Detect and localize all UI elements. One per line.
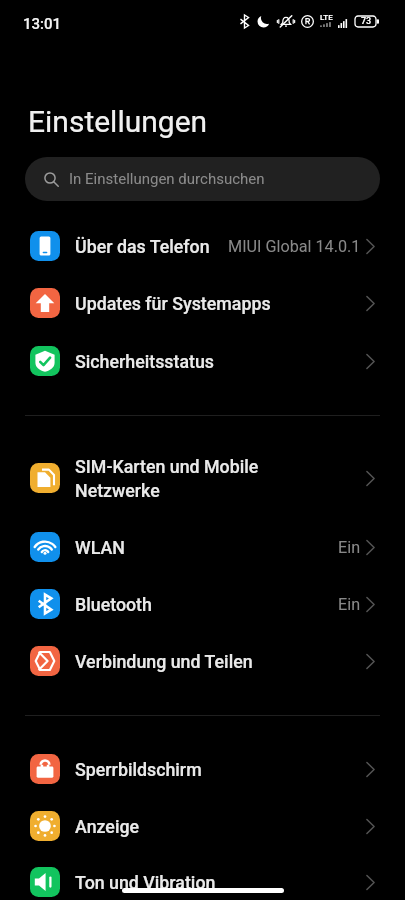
staticText: LTE	[320, 13, 333, 22]
staticText: Ein	[338, 595, 361, 614]
staticText: Anzeige	[75, 816, 366, 837]
button[interactable]: SIM-Karten und Mobile Netzwerke	[0, 449, 405, 507]
staticText: Updates für Systemapps	[75, 293, 366, 314]
button[interactable]: Anzeige	[0, 797, 405, 855]
staticText: MIUI Global 14.0.1	[228, 237, 361, 256]
button[interactable]: In Einstellungen durchsuchen	[25, 157, 380, 201]
staticText: Ein	[338, 538, 361, 557]
staticText: WLAN	[75, 537, 338, 558]
staticText: Über das Telefon	[75, 236, 228, 257]
staticText: SIM-Karten und Mobile Netzwerke	[75, 456, 366, 501]
button[interactable]: Sperrbildschirm	[0, 740, 405, 798]
staticText: Verbindung und Teilen	[75, 651, 366, 672]
button[interactable]: Updates für Systemapps	[0, 274, 405, 332]
button[interactable]: Sicherheitsstatus	[0, 332, 405, 390]
staticText: In Einstellungen durchsuchen	[69, 170, 265, 188]
button[interactable]: WLAN	[0, 518, 405, 576]
button[interactable]: Über das Telefon	[0, 217, 405, 275]
staticText: Einstellungen	[28, 104, 208, 139]
staticText: Sicherheitsstatus	[75, 351, 366, 372]
staticText: 13:01	[23, 15, 62, 33]
button[interactable]: Verbindung und Teilen	[0, 632, 405, 690]
staticText: Bluetooth	[75, 594, 338, 615]
button[interactable]: Bluetooth	[0, 575, 405, 633]
button[interactable]: Ton und Vibration	[0, 853, 405, 900]
staticText: Sperrbildschirm	[75, 759, 366, 780]
staticText: Ton und Vibration	[75, 872, 366, 893]
staticText: 73	[361, 16, 372, 27]
